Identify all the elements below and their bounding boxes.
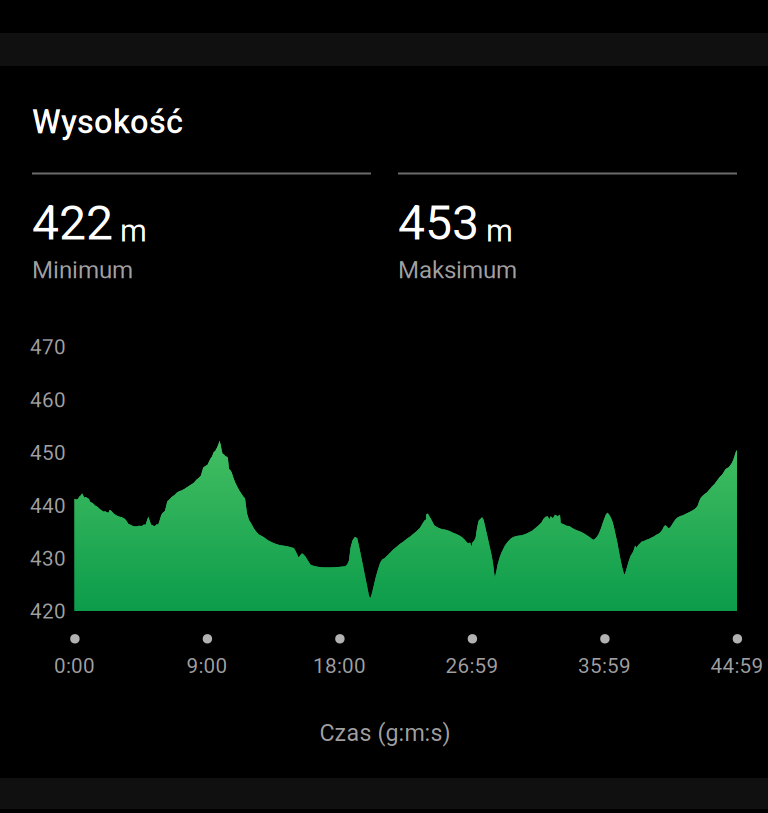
staticText: 26:59 bbox=[445, 654, 498, 678]
staticText: 18:00 bbox=[313, 654, 366, 678]
staticText: 450 bbox=[30, 441, 66, 465]
staticText: m bbox=[486, 213, 513, 249]
staticText: 422 bbox=[32, 195, 113, 251]
button[interactable]: 453 bbox=[398, 173, 737, 285]
staticText: m bbox=[120, 213, 147, 249]
staticText: 420 bbox=[30, 599, 66, 624]
staticText: 470 bbox=[30, 335, 66, 359]
staticText: 430 bbox=[30, 547, 66, 571]
staticText: 9:00 bbox=[186, 654, 227, 678]
button[interactable]: 422 bbox=[32, 173, 371, 285]
staticText: Minimum bbox=[32, 256, 133, 284]
staticText: Maksimum bbox=[398, 256, 517, 284]
staticText: 0:00 bbox=[54, 654, 95, 678]
staticText: Wysokość bbox=[32, 103, 183, 141]
staticText: 453 bbox=[398, 195, 479, 251]
staticText: 440 bbox=[30, 494, 66, 518]
staticText: 35:59 bbox=[578, 654, 631, 678]
staticText: 44:59 bbox=[710, 654, 763, 678]
staticText: Czas (g:m:s) bbox=[319, 719, 450, 747]
staticText: 460 bbox=[30, 388, 66, 412]
